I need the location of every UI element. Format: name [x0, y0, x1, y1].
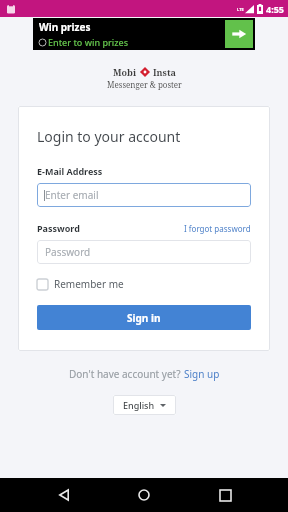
staticText: Enter to win prizes	[48, 36, 129, 48]
staticText: English	[123, 399, 155, 411]
staticText: Remember me	[54, 277, 124, 291]
staticText: Win prizes	[39, 20, 91, 34]
button[interactable]: Recent apps	[208, 478, 242, 512]
button[interactable]: Go to offer	[225, 20, 253, 48]
button[interactable]: Enter email	[37, 183, 251, 207]
staticText: Sign in	[127, 311, 161, 325]
staticText: I forgot password	[184, 223, 251, 234]
staticText: Enter email	[45, 188, 99, 202]
staticText: E-Mail Address	[37, 165, 103, 177]
button[interactable]: Password	[37, 240, 251, 264]
button[interactable]: Sign in	[37, 305, 251, 330]
staticText: Insta	[153, 66, 176, 78]
staticText: Mobi	[113, 66, 137, 78]
button[interactable]: English	[113, 395, 176, 415]
staticText: Don't have account yet?	[69, 367, 184, 381]
staticText: Password	[37, 222, 80, 234]
button[interactable]: Sign up	[184, 367, 220, 381]
button[interactable]: Win prizes advertisement	[33, 18, 255, 50]
button[interactable]: I forgot password	[184, 223, 251, 234]
staticText: Sign up	[184, 367, 220, 381]
staticText: Messenger & poster	[107, 79, 182, 90]
staticText: Login to your account	[37, 127, 181, 146]
button[interactable]: Back	[47, 478, 81, 512]
staticText: Password	[45, 245, 91, 259]
button[interactable]: Remember me	[37, 277, 124, 291]
staticText: LTE	[237, 7, 244, 12]
staticText: 4:55	[266, 3, 284, 15]
button[interactable]: Home	[127, 478, 161, 512]
